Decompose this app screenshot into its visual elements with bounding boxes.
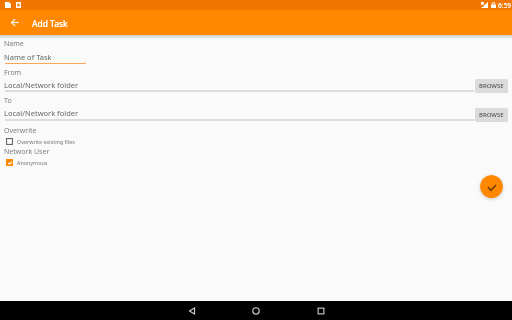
button[interactable]: Home bbox=[241, 301, 271, 320]
button[interactable]: Navigate up bbox=[5, 10, 24, 35]
staticText: Add Task bbox=[32, 18, 68, 29]
button[interactable]: Overwrite existing files bbox=[5, 138, 75, 145]
staticText: Name of Task bbox=[4, 52, 52, 62]
staticText: Local/Network folder bbox=[4, 80, 79, 90]
button[interactable]: Anonymous bbox=[5, 159, 48, 166]
button[interactable]: Local/Network folder bbox=[4, 77, 474, 92]
staticText: 6:59 bbox=[498, 1, 511, 10]
staticText: Name bbox=[4, 39, 24, 49]
button[interactable]: BROWSE bbox=[475, 79, 508, 93]
staticText: Local/Network folder bbox=[4, 108, 79, 118]
staticText: BROWSE bbox=[479, 82, 504, 90]
staticText: Anonymous bbox=[17, 159, 48, 166]
button[interactable]: BROWSE bbox=[475, 108, 508, 122]
button[interactable]: Save task bbox=[480, 175, 503, 198]
button[interactable]: Name of Task bbox=[4, 49, 86, 64]
staticText: Overwrite bbox=[4, 126, 37, 136]
staticText: Overwrite existing files bbox=[17, 138, 75, 145]
button[interactable]: Local/Network folder bbox=[4, 105, 474, 121]
staticText: From bbox=[4, 68, 22, 78]
staticText: Network User bbox=[4, 147, 50, 157]
button[interactable]: Recent apps bbox=[306, 301, 336, 320]
staticText: To bbox=[4, 96, 12, 106]
button[interactable]: Back bbox=[177, 301, 207, 320]
staticText: BROWSE bbox=[479, 111, 504, 119]
